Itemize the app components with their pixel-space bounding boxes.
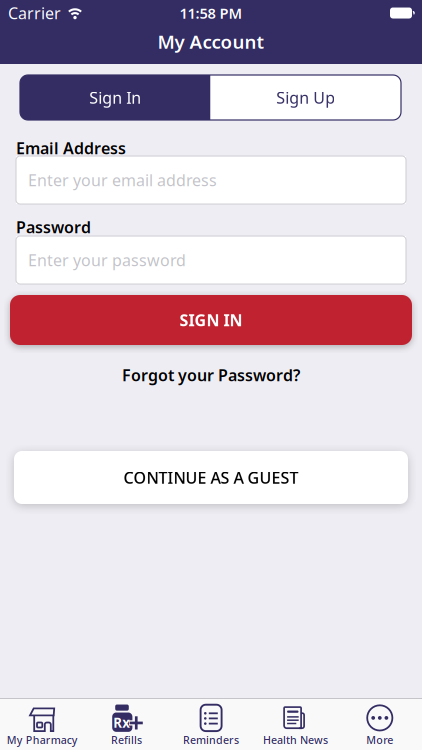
button[interactable]: Health News — [253, 699, 338, 750]
button[interactable]: Forgot your Password? — [122, 364, 300, 386]
staticText: Health News — [263, 733, 328, 747]
staticText: CONTINUE AS A GUEST — [123, 467, 298, 488]
staticText: My Account — [157, 29, 264, 54]
button[interactable]: More — [338, 699, 422, 750]
staticText: Carrier — [8, 2, 61, 24]
button[interactable]: SIGN IN — [10, 295, 412, 345]
staticText: More — [366, 733, 393, 747]
staticText: Refills — [111, 733, 142, 747]
staticText: SIGN IN — [179, 309, 242, 331]
button[interactable]: Enter your password — [16, 236, 406, 284]
button[interactable]: Sign In — [20, 75, 401, 120]
staticText: Rx — [113, 714, 130, 731]
staticText: Reminders — [183, 733, 239, 747]
staticText: Password — [16, 216, 91, 238]
button[interactable]: Enter your email address — [16, 156, 406, 204]
staticText: Enter your password — [28, 249, 186, 271]
staticText: Sign Up — [276, 87, 335, 108]
staticText: Sign In — [89, 87, 141, 108]
staticText: My Pharmacy — [7, 733, 78, 747]
button[interactable]: Reminders — [169, 699, 253, 750]
staticText: 11:58 PM — [179, 3, 242, 23]
staticText: Enter your email address — [28, 169, 217, 191]
button[interactable]: My Pharmacy — [0, 699, 84, 750]
button[interactable]: CONTINUE AS A GUEST — [14, 451, 408, 504]
button[interactable]: Rx — [84, 699, 169, 750]
staticText: Email Address — [16, 137, 126, 159]
staticText: Forgot your Password? — [122, 364, 300, 386]
